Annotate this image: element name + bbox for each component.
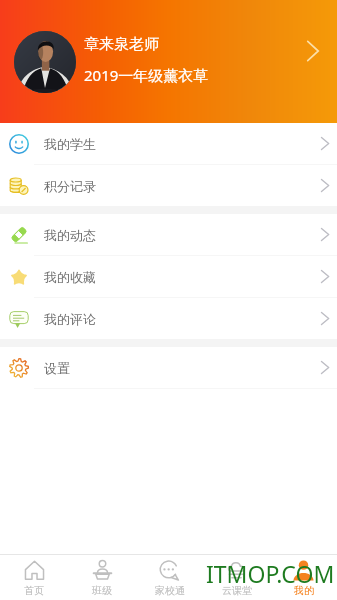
staticText: 我的 [294,584,314,597]
button[interactable]: 章来泉老师 [0,0,337,123]
staticText: 我的收藏 [44,269,96,285]
staticText: ITMOP.COM [206,558,335,589]
button[interactable]: 积分记录 [0,165,337,206]
button[interactable]: 班级 [68,555,136,600]
button[interactable]: 我的学生 [0,123,337,164]
staticText: 积分记录 [44,178,96,194]
button[interactable]: 家校通 [136,555,203,600]
staticText: 设置 [44,360,70,376]
button[interactable]: 我的 [270,555,337,600]
button[interactable]: 我的动态 [0,214,337,255]
button[interactable]: 我的收藏 [0,256,337,297]
button[interactable]: 云课堂 [203,555,270,600]
staticText: 章来泉老师 [84,35,159,54]
staticText: 我的评论 [44,311,96,327]
staticText: 2019一年级薰衣草 [84,65,209,85]
staticText: 云课堂 [222,584,252,597]
staticText: 首页 [24,584,44,597]
staticText: 班级 [92,584,112,597]
staticText: 我的学生 [44,136,96,152]
button[interactable]: 设置 [0,347,337,388]
staticText: 我的动态 [44,227,96,243]
button[interactable]: 首页 [0,555,68,600]
staticText: 家校通 [155,584,185,597]
button[interactable]: 我的评论 [0,298,337,339]
